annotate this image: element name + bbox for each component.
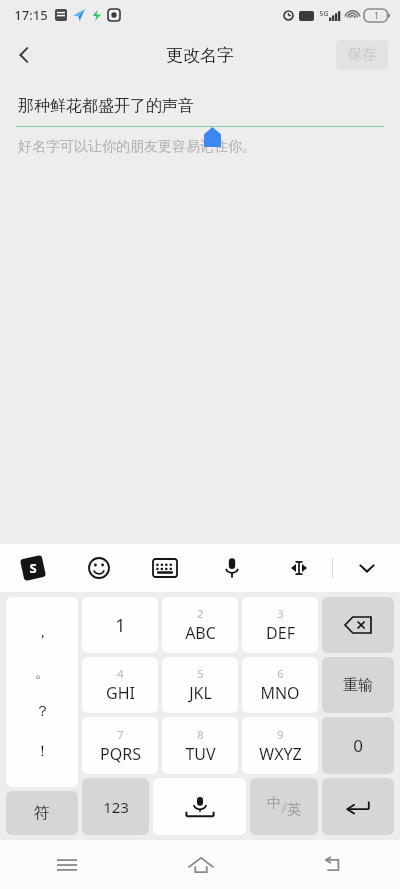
staticText: 3 [277,606,284,621]
staticText: GHI [106,682,135,704]
button[interactable]: Move cursor [265,544,332,592]
staticText: PQRS [100,743,141,765]
button[interactable]: 0 [322,717,394,774]
staticText: DEF [266,622,295,644]
button[interactable]: Retype [322,657,394,713]
staticText: 英 [287,801,301,819]
staticText: 2 [197,606,204,621]
staticText: 17:15 [14,6,48,24]
button[interactable]: Keyboard layout [132,544,198,592]
staticText: / [281,797,287,817]
staticText: 。 [35,663,50,682]
staticText: 7 [117,727,124,742]
staticText: 符 [34,803,50,823]
staticText: ！ [35,742,50,761]
staticText: 保存 [348,46,376,64]
button[interactable]: 8 TUV [162,717,238,774]
button[interactable]: Recent apps [0,840,134,889]
staticText: 重输 [343,676,373,695]
button[interactable]: Sogou input method [0,544,66,592]
staticText: 0 [353,734,363,757]
staticText: 好名字可以让你的朋友更容易记住你。 [18,138,256,156]
staticText: TUV [185,743,216,765]
button[interactable]: Chinese English toggle [250,778,318,835]
staticText: 那种鲜花都盛开了的声音 [18,96,194,116]
staticText: 6 [277,666,284,681]
button[interactable]: Voice input [198,544,265,592]
staticText: 4 [117,666,124,681]
button[interactable]: 1 [82,597,158,653]
staticText: 9 [277,727,284,742]
staticText: ， [35,623,50,642]
staticText: 更改名字 [166,45,234,66]
staticText: 1 [374,10,379,21]
button[interactable]: Backspace [322,597,394,653]
button[interactable]: 保存 [336,40,388,70]
staticText: JKL [189,682,212,704]
button[interactable]: Home [134,840,267,889]
button[interactable]: 5 JKL [162,657,238,713]
staticText: 5G [319,9,329,19]
button[interactable]: 4 GHI [82,657,158,713]
button[interactable]: Back [267,840,400,889]
button[interactable]: Punctuation [6,597,78,787]
staticText: ABC [185,622,216,644]
button[interactable]: Symbols [6,791,78,835]
staticText: MNO [260,682,300,704]
staticText: 1 [115,613,126,638]
staticText: 8 [197,727,204,742]
staticText: 123 [103,797,129,817]
button[interactable]: 3 DEF [242,597,318,653]
button[interactable]: 7 PQRS [82,717,158,774]
button[interactable]: Enter [322,778,394,835]
staticText: ？ [35,702,50,721]
button[interactable]: 2 ABC [162,597,238,653]
button[interactable]: Emoji [66,544,132,592]
button[interactable]: Hide keyboard [333,544,400,592]
button[interactable]: 123 [82,778,149,835]
button[interactable]: Back [0,31,48,79]
staticText: 中 [267,795,281,813]
staticText: S [29,559,37,577]
button[interactable]: 6 MNO [242,657,318,713]
staticText: WXYZ [259,743,302,765]
button[interactable]: Space, voice input [153,778,246,835]
button[interactable]: 9 WXYZ [242,717,318,774]
staticText: 5 [197,666,204,681]
